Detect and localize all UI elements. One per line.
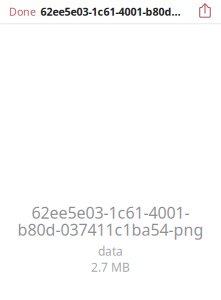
staticText: 62ee5e03-1c61-4001-b80d… bbox=[40, 4, 180, 19]
staticText: data bbox=[98, 243, 123, 259]
button[interactable]: Done bbox=[9, 4, 36, 19]
staticText: 62ee5e03-1c61-4001- bbox=[31, 202, 189, 223]
button[interactable]: Share bbox=[199, 3, 211, 20]
staticText: 2.7 MB bbox=[91, 259, 130, 275]
staticText: Done bbox=[9, 4, 36, 19]
staticText: b80d-037411c1ba54-png bbox=[17, 219, 203, 240]
